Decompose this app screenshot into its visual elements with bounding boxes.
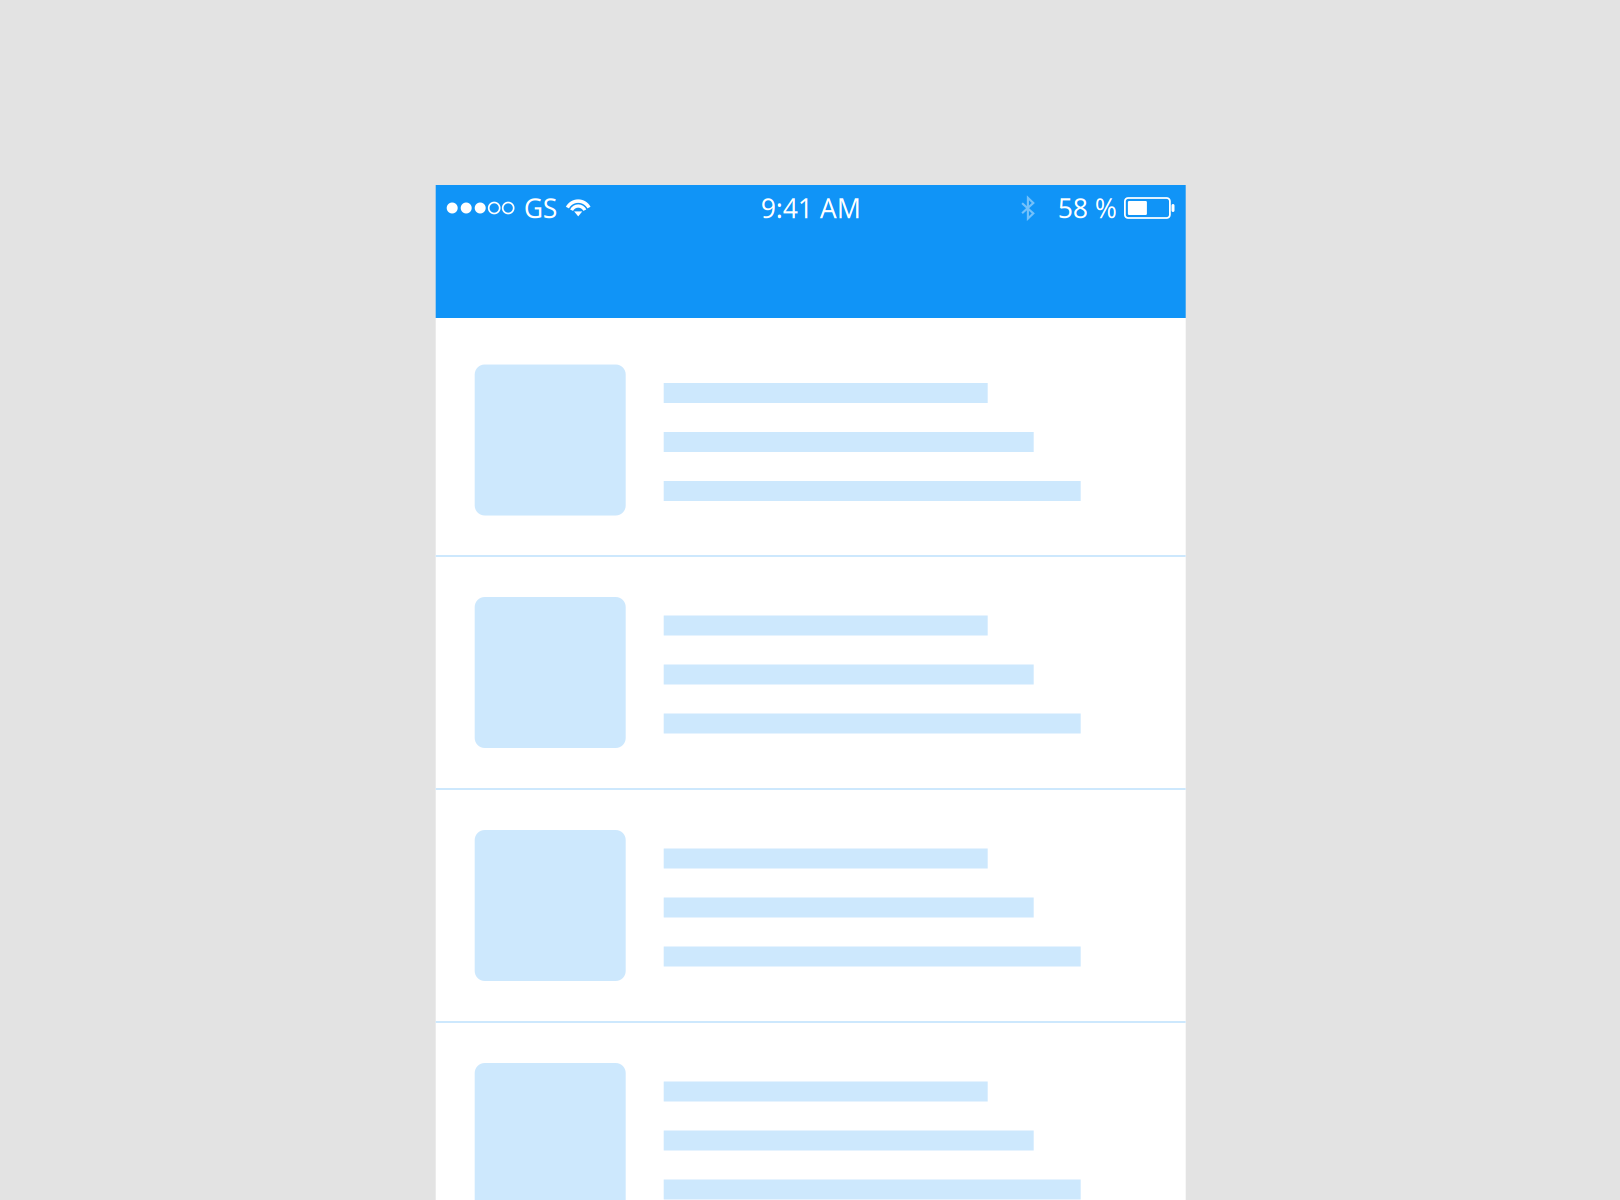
staticText: 9:41 AM (761, 190, 861, 226)
button[interactable]: Loading item (436, 556, 1186, 789)
button[interactable]: Loading item (436, 1022, 1186, 1200)
button[interactable]: Loading item (436, 318, 1186, 556)
staticText: 58 % (1058, 190, 1117, 226)
button[interactable]: Loading item (436, 789, 1186, 1022)
staticText: GS (524, 190, 558, 226)
